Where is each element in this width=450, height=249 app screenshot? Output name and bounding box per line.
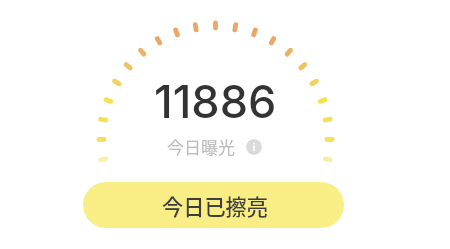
button[interactable]: 今日已擦亮 <box>83 182 344 228</box>
staticText: 今日曝光 <box>167 134 235 159</box>
staticText: 11886 <box>154 74 277 128</box>
button[interactable]: More information about today's exposure <box>246 139 262 155</box>
staticText: 今日已擦亮 <box>162 190 268 221</box>
